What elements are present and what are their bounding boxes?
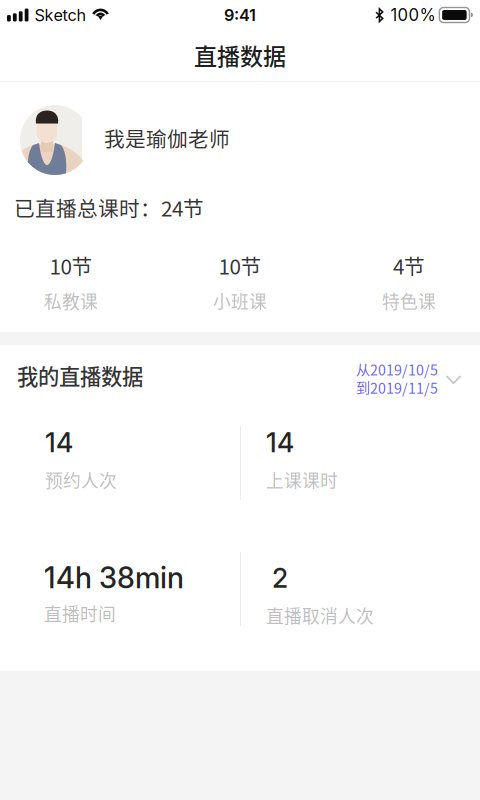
staticText: 小班课	[213, 288, 267, 314]
staticText: 我的直播数据	[17, 360, 143, 391]
staticText: 9:41	[224, 5, 256, 25]
staticText: 14	[266, 426, 294, 459]
staticText: 特色课	[382, 288, 436, 314]
staticText: 已直播总课时：24节	[14, 192, 204, 222]
staticText: 2	[272, 562, 288, 594]
staticText: 预约人次	[45, 467, 117, 493]
button[interactable]: 从2019/10/5	[350, 354, 472, 402]
staticText: 4节	[393, 250, 425, 280]
staticText: 直播时间	[44, 600, 116, 626]
staticText: 14	[45, 426, 73, 459]
staticText: Sketch	[34, 5, 86, 25]
staticText: 上课课时	[266, 467, 338, 493]
staticText: 直播取消人次	[266, 602, 374, 628]
staticText: 我是瑜伽老师	[104, 123, 230, 153]
staticText: 10节	[218, 250, 261, 280]
staticText: 直播数据	[194, 38, 286, 72]
staticText: 100%	[390, 5, 435, 25]
staticText: 到2019/11/5	[356, 377, 438, 398]
staticText: 从2019/10/5	[356, 359, 438, 380]
staticText: 私教课	[44, 288, 98, 314]
staticText: 14h 38min	[44, 560, 184, 595]
staticText: 10节	[49, 250, 92, 280]
